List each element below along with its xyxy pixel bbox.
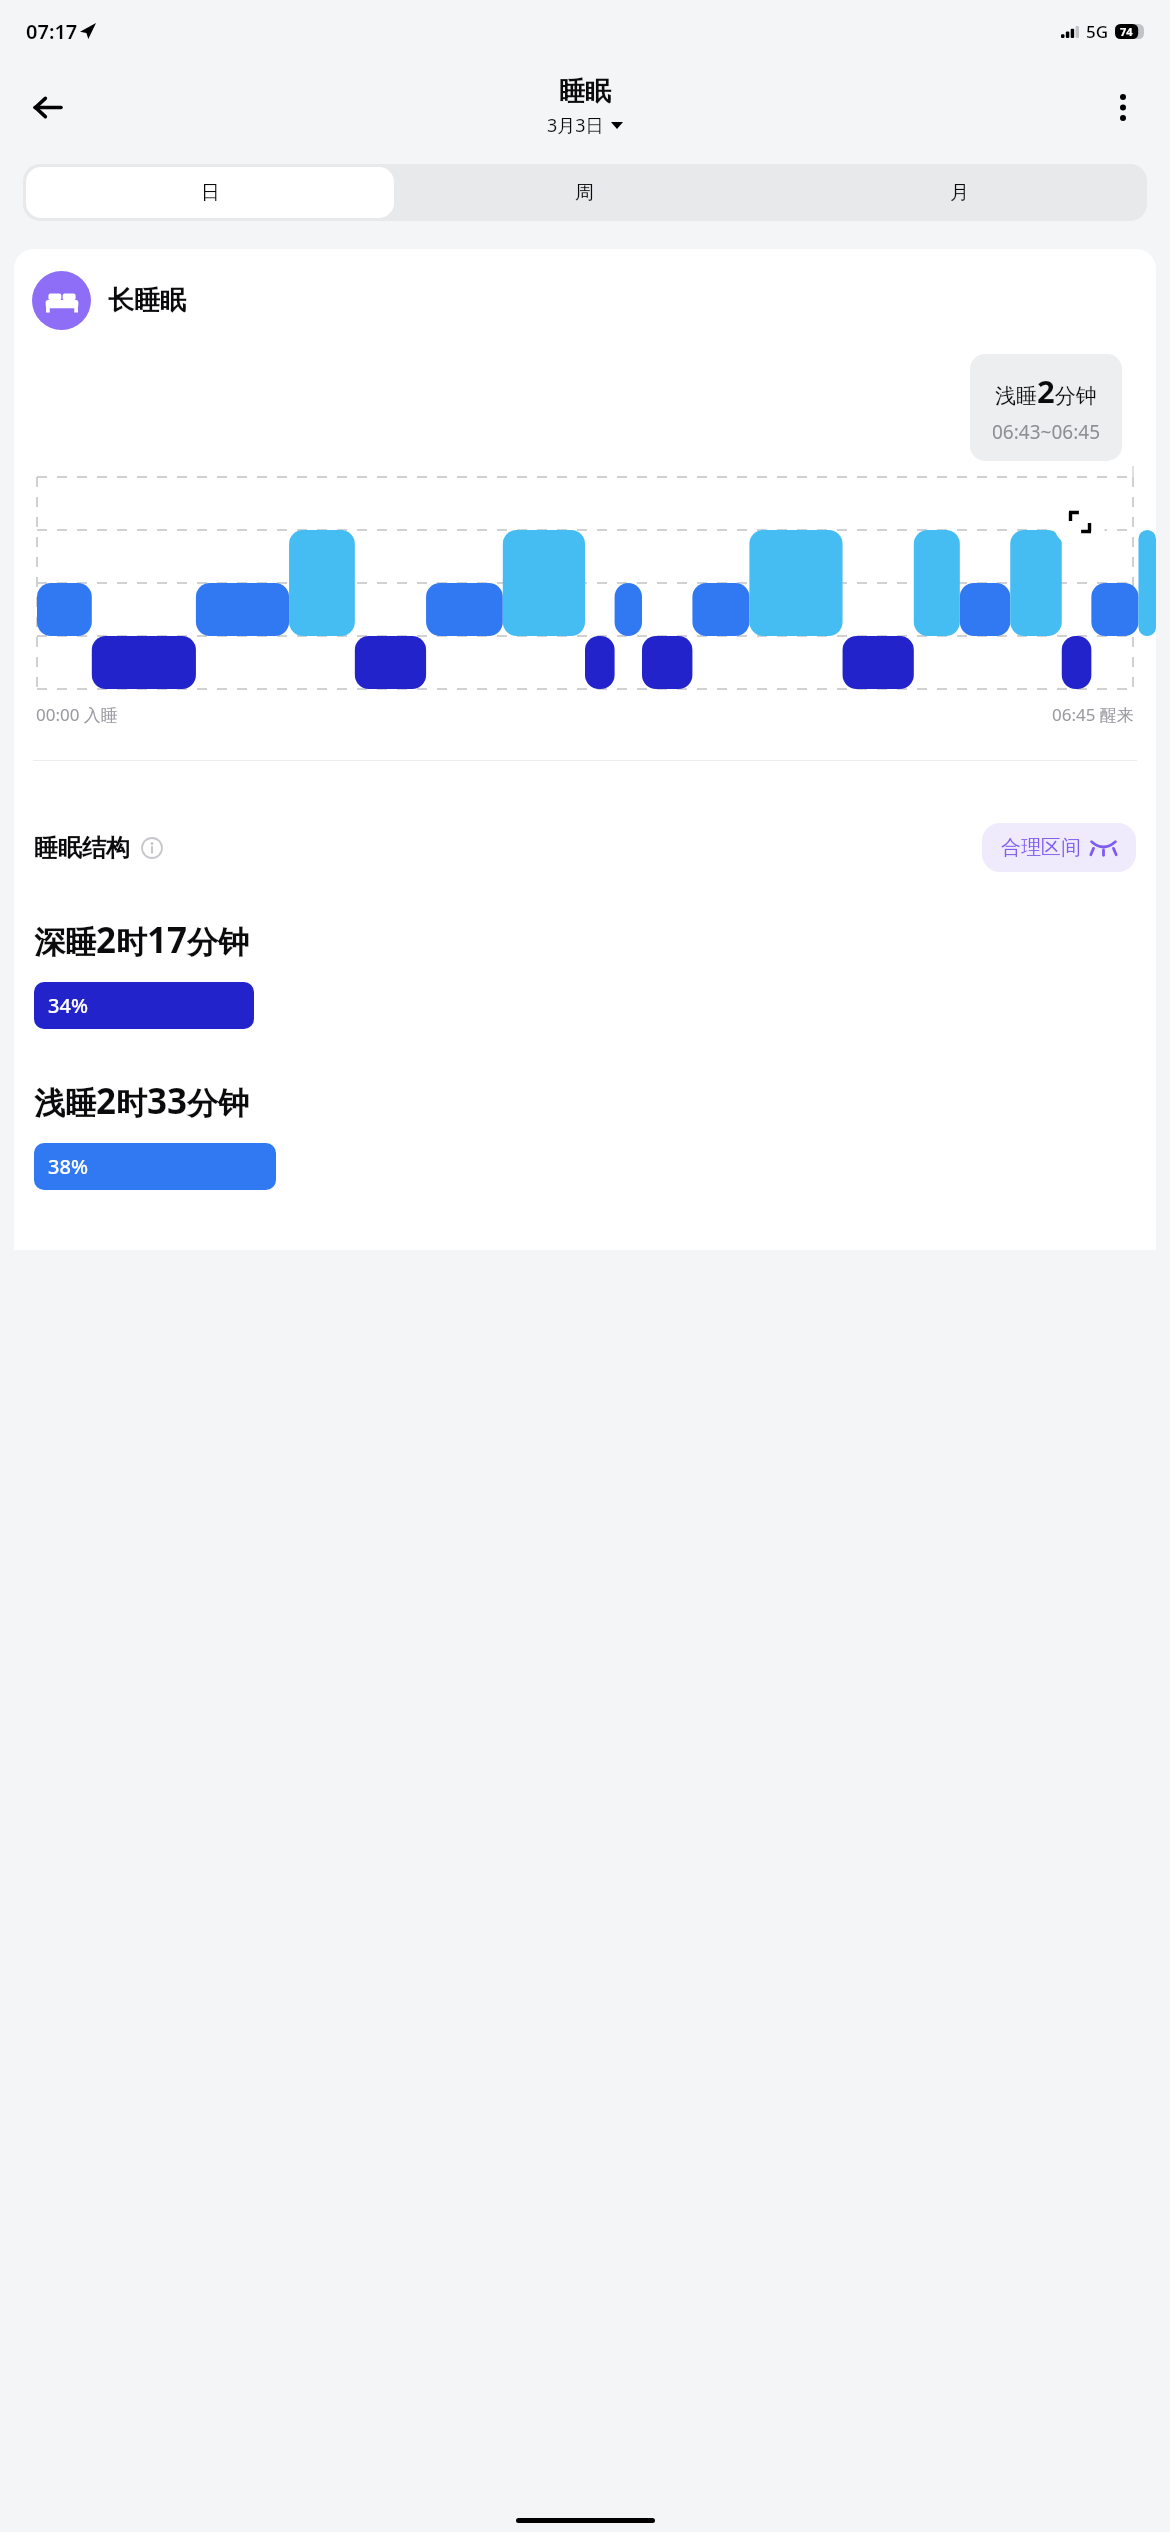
staticText: 38% [48,1153,88,1180]
button[interactable]: 月 [775,167,1144,218]
staticText: 00:00 入睡 [36,703,118,726]
button[interactable]: 睡眠结构 [34,833,163,863]
button[interactable]: More options [1096,80,1150,134]
staticText: 5G [1086,20,1109,43]
staticText: 74 [1120,24,1133,39]
staticText: 06:43~06:45 [992,419,1100,445]
staticText: 06:45 醒来 [1052,703,1134,726]
staticText: 浅睡2分钟 [995,370,1097,412]
button[interactable]: 3月3日 [543,112,627,139]
staticText: 3月3日 [547,113,604,138]
staticText: 浅睡2时33分钟 [34,1077,250,1125]
staticText: 日 [201,181,220,205]
staticText: 长睡眠 [108,284,186,317]
staticText: 34% [48,992,88,1019]
button[interactable]: 周 [400,167,769,218]
button[interactable]: 长睡眠 [32,271,1138,330]
staticText: 睡眠 [559,75,611,108]
staticText: 07:17 [26,18,78,45]
button[interactable]: 日 [26,167,394,218]
button[interactable]: 合理区间 [982,823,1136,872]
staticText: 月 [950,181,969,205]
button[interactable]: Back [18,78,76,136]
staticText: 睡眠结构 [34,833,130,863]
button[interactable]: Expand chart [1053,495,1106,548]
staticText: 周 [575,181,594,205]
staticText: 深睡2时17分钟 [34,916,250,964]
staticText: 合理区间 [1001,835,1081,860]
